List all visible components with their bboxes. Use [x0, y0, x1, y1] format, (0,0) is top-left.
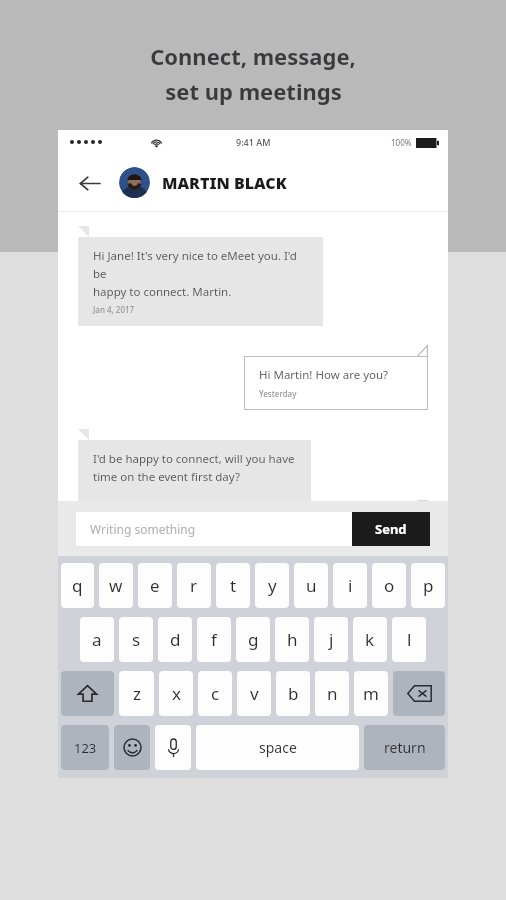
button[interactable]: Writing something [76, 512, 352, 546]
button[interactable]: p [411, 563, 445, 608]
staticText: u [306, 574, 317, 597]
staticText: y [268, 574, 277, 597]
staticText: Hi Martin! How are you? [259, 367, 389, 383]
staticText: Send [375, 520, 407, 538]
button[interactable]: Shift [61, 671, 114, 716]
button[interactable]: MARTIN BLACK [162, 172, 287, 194]
button[interactable]: o [372, 563, 406, 608]
staticText: b [288, 682, 299, 705]
staticText: e [150, 574, 160, 597]
button[interactable]: s [119, 617, 153, 662]
staticText: space [259, 738, 297, 757]
staticText: k [365, 628, 375, 651]
button[interactable]: Hi Jane! It's very nice to eMeet you. I'… [78, 237, 323, 326]
button[interactable]: b [276, 671, 310, 716]
staticText: 100% [391, 137, 412, 148]
staticText: Yesterday [259, 388, 297, 399]
button[interactable]: c [198, 671, 232, 716]
button[interactable]: I'd be happy to connect, will you have t… [78, 440, 311, 501]
button[interactable]: 123 [61, 725, 109, 770]
button[interactable]: t [216, 563, 250, 608]
button[interactable]: a [80, 617, 114, 662]
staticText: a [92, 628, 102, 651]
button[interactable]: f [197, 617, 231, 662]
button[interactable]: h [275, 617, 309, 662]
staticText: d [170, 628, 181, 651]
staticText: 9:41 AM [236, 136, 271, 148]
staticText: return [384, 738, 426, 757]
staticText: h [287, 628, 298, 651]
staticText: m [363, 682, 379, 705]
button[interactable]: v [237, 671, 271, 716]
staticText: 123 [74, 739, 97, 757]
button[interactable]: Back [72, 166, 106, 200]
staticText: w [109, 574, 123, 597]
staticText: Writing something [90, 521, 196, 537]
button[interactable]: space [196, 725, 359, 770]
staticText: x [172, 682, 181, 705]
button[interactable]: u [294, 563, 328, 608]
staticText: Hi Jane! It's very nice to eMeet you. I'… [93, 248, 308, 299]
staticText: n [327, 682, 338, 705]
staticText: j [329, 628, 334, 651]
button[interactable]: g [236, 617, 270, 662]
button[interactable]: n [315, 671, 349, 716]
staticText: z [133, 682, 141, 705]
staticText: i [348, 574, 353, 597]
button[interactable]: z [119, 671, 154, 716]
staticText: o [384, 574, 395, 597]
staticText: set up meetings [165, 76, 342, 106]
staticText: c [211, 682, 220, 705]
staticText: Connect, message, [150, 41, 356, 71]
button[interactable]: Hi Martin! How are you? [244, 356, 428, 410]
button[interactable]: i [333, 563, 367, 608]
staticText: f [211, 628, 217, 651]
button[interactable]: x [159, 671, 193, 716]
staticText: I'd be happy to connect, will you have t… [93, 451, 295, 484]
staticText: Jan 4, 2017 [93, 304, 135, 315]
staticText: s [132, 628, 141, 651]
button[interactable]: r [177, 563, 211, 608]
staticText: p [423, 574, 434, 597]
staticText: r [190, 574, 198, 597]
button[interactable]: Emoji [114, 725, 150, 770]
staticText: l [407, 628, 412, 651]
button[interactable]: return [364, 725, 445, 770]
button[interactable]: Send [352, 512, 430, 546]
button[interactable]: q [61, 563, 94, 608]
button[interactable]: k [353, 617, 387, 662]
button[interactable]: y [255, 563, 289, 608]
button[interactable]: m [354, 671, 388, 716]
staticText: g [248, 628, 259, 651]
staticText: q [72, 574, 83, 597]
button[interactable]: Voice input [155, 725, 191, 770]
button[interactable]: d [158, 617, 192, 662]
button[interactable]: j [314, 617, 348, 662]
staticText: v [250, 682, 259, 705]
button[interactable]: w [99, 563, 133, 608]
button[interactable]: l [392, 617, 426, 662]
staticText: t [230, 574, 237, 597]
button[interactable]: Backspace [393, 671, 445, 716]
button[interactable]: e [138, 563, 172, 608]
